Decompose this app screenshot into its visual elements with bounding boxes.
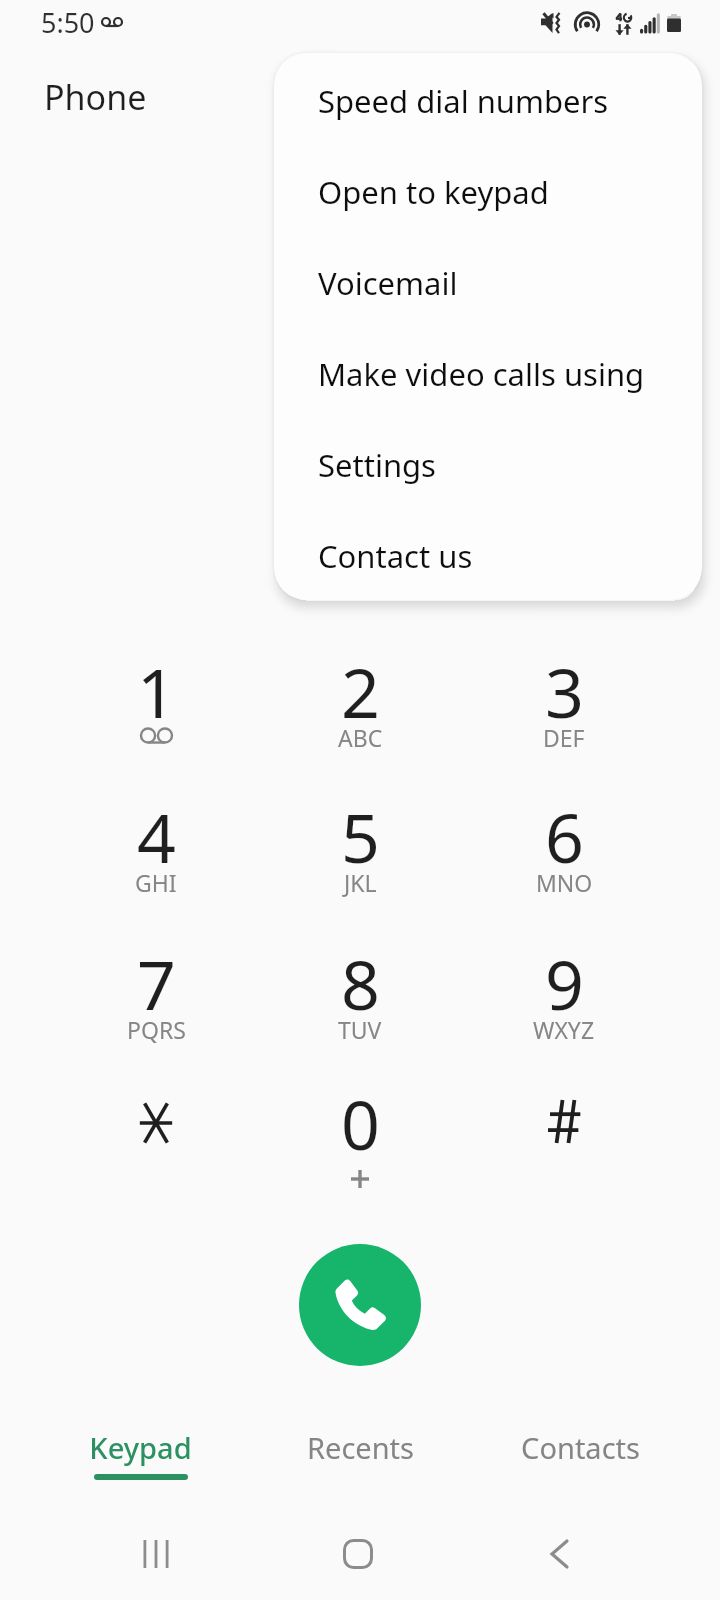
button[interactable]: Recents bbox=[116, 1514, 196, 1594]
staticText: 8 bbox=[341, 937, 380, 1030]
button[interactable]: 4 bbox=[54, 792, 258, 936]
staticText: Keypad bbox=[89, 1428, 192, 1467]
staticText: Recents bbox=[307, 1428, 414, 1467]
button[interactable]: 0 bbox=[258, 1079, 462, 1223]
staticText: WXYZ bbox=[533, 1014, 595, 1045]
button[interactable]: Star bbox=[54, 1079, 258, 1223]
staticText: Contacts bbox=[521, 1428, 640, 1467]
button[interactable]: 9 bbox=[462, 939, 666, 1083]
button[interactable]: Voicemail bbox=[274, 235, 702, 326]
button[interactable]: 5 bbox=[258, 792, 462, 936]
button[interactable]: Settings bbox=[274, 417, 702, 508]
staticText: 3 bbox=[545, 645, 584, 738]
button[interactable]: Keypad bbox=[30, 1428, 250, 1494]
staticText: Phone bbox=[44, 74, 147, 120]
staticText: 7 bbox=[137, 937, 176, 1030]
button[interactable]: 2 bbox=[258, 647, 462, 791]
button[interactable]: Contact us bbox=[274, 508, 702, 599]
button[interactable]: 6 bbox=[462, 792, 666, 936]
staticText: Make video calls using bbox=[318, 353, 645, 395]
button[interactable]: 8 bbox=[258, 939, 462, 1083]
button[interactable]: Pound bbox=[462, 1079, 666, 1223]
button[interactable]: Home bbox=[318, 1514, 398, 1594]
staticText: 6 bbox=[545, 790, 584, 883]
staticText: GHI bbox=[135, 867, 177, 898]
button[interactable]: Make video calls using bbox=[274, 326, 702, 417]
button[interactable]: Open to keypad bbox=[274, 144, 702, 235]
staticText: TUV bbox=[338, 1014, 382, 1045]
staticText: Voicemail bbox=[318, 262, 458, 304]
button[interactable]: 3 bbox=[462, 647, 666, 791]
staticText: MNO bbox=[536, 867, 593, 898]
button[interactable]: Speed dial numbers bbox=[274, 53, 702, 144]
staticText: ABC bbox=[338, 722, 383, 753]
staticText: Settings bbox=[318, 444, 436, 486]
button[interactable]: Recents bbox=[250, 1428, 470, 1494]
staticText: Open to keypad bbox=[318, 171, 549, 213]
staticText: JKL bbox=[344, 867, 377, 898]
button[interactable]: 1 bbox=[54, 647, 258, 791]
staticText: 1 bbox=[137, 645, 176, 738]
staticText: PQRS bbox=[127, 1014, 186, 1045]
button[interactable]: 7 bbox=[54, 939, 258, 1083]
staticText: 4 bbox=[137, 790, 176, 883]
staticText: Speed dial numbers bbox=[318, 80, 609, 122]
staticText: 5:50 bbox=[41, 4, 95, 41]
staticText: 2 bbox=[341, 645, 380, 738]
staticText: DEF bbox=[543, 722, 585, 753]
staticText: 9 bbox=[545, 937, 584, 1030]
staticText: Contact us bbox=[318, 535, 473, 577]
button[interactable]: Contacts bbox=[470, 1428, 690, 1494]
button[interactable]: Call bbox=[299, 1244, 421, 1366]
staticText: 5 bbox=[341, 790, 380, 883]
button[interactable]: Back bbox=[519, 1514, 599, 1594]
staticText: 0 bbox=[341, 1077, 380, 1170]
